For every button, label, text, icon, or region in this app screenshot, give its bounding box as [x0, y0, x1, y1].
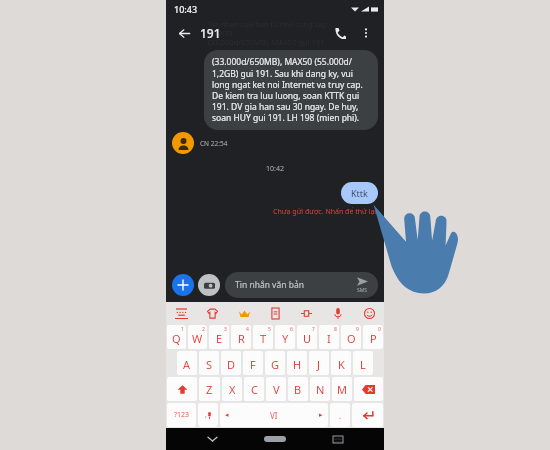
button[interactable]: Clipboard [266, 304, 284, 322]
staticText: Y [282, 331, 289, 346]
staticText: Z [206, 382, 213, 397]
button[interactable]: 3 [209, 325, 229, 349]
button[interactable]: 8 [319, 325, 339, 349]
button[interactable]: . [330, 403, 350, 427]
staticText: SMS [357, 287, 368, 294]
staticText: J [317, 357, 321, 372]
button[interactable]: ?123 [167, 403, 196, 427]
button[interactable]: Home [258, 429, 292, 449]
staticText: 2 [202, 326, 205, 333]
button[interactable]: Stickers [203, 304, 221, 322]
button[interactable]: 9 [341, 325, 361, 349]
staticText: L [360, 357, 366, 372]
button[interactable]: Space [220, 403, 328, 427]
button[interactable]: L [353, 351, 373, 375]
staticText: D [227, 357, 236, 372]
staticText: 9 [356, 326, 359, 333]
button[interactable]: D [221, 351, 241, 375]
staticText: ◂ [225, 411, 229, 419]
button[interactable]: 1 [167, 325, 186, 349]
button[interactable]: More options [356, 23, 376, 43]
staticText: Kttk [351, 187, 368, 199]
staticText: E [216, 331, 223, 346]
staticText: O [347, 331, 356, 346]
staticText: VI [270, 410, 278, 421]
button[interactable]: Camera [198, 274, 220, 296]
button[interactable]: 0 [363, 325, 383, 349]
button[interactable]: Emoji [360, 304, 378, 322]
other: Tap gesture [370, 200, 460, 295]
staticText: Q [172, 331, 181, 346]
staticText: R [238, 331, 245, 346]
button[interactable]: Text edit [297, 304, 315, 322]
button[interactable]: 6 [275, 325, 295, 349]
button[interactable]: S [199, 351, 219, 375]
button[interactable]: 2 [188, 325, 207, 349]
button[interactable]: (33.000d/650MB), MAX50 (55.000d/1,2GB) g… [204, 50, 378, 130]
staticText: F [250, 357, 256, 372]
staticText: 191 [200, 25, 221, 41]
staticText: . [339, 410, 342, 421]
staticText: 6 [290, 326, 293, 333]
staticText: U [303, 331, 312, 346]
button[interactable]: Back [202, 429, 222, 449]
button[interactable]: A [177, 351, 197, 375]
staticText: 10:43 [174, 3, 198, 15]
staticText: G [271, 357, 280, 372]
button[interactable]: V [266, 377, 286, 401]
staticText: 3 [224, 326, 227, 333]
staticText: K [338, 357, 345, 372]
button[interactable]: B [288, 377, 308, 401]
staticText: , [205, 410, 207, 420]
button[interactable]: M [332, 377, 352, 401]
button[interactable]: F [243, 351, 263, 375]
staticText: X [229, 382, 236, 397]
staticText: I [327, 331, 331, 346]
button[interactable]: Switch keyboard [328, 429, 348, 449]
button[interactable]: Premium [235, 304, 253, 322]
staticText: 1 [181, 326, 184, 333]
button[interactable]: N [310, 377, 330, 401]
button[interactable] [172, 132, 194, 154]
staticText: CN 22:54 [200, 139, 228, 148]
staticText: B [294, 382, 302, 397]
staticText: V [273, 382, 280, 397]
button[interactable]: Call [330, 23, 350, 43]
staticText: ?123 [174, 410, 190, 420]
button[interactable]: Kttk [341, 182, 378, 204]
button[interactable]: Enter [352, 403, 383, 427]
staticText: 4 [246, 326, 249, 333]
staticText: Tin nhan cua ban tu nha cung cap MAX70 (… [208, 19, 342, 47]
staticText: (33.000d/650MB), MAX50 (55.000d/1,2GB) g… [212, 56, 370, 124]
staticText: 5 [268, 326, 271, 333]
button[interactable]: K [331, 351, 351, 375]
button[interactable]: Shift [167, 377, 197, 401]
staticText: T [260, 331, 267, 346]
button[interactable]: Add attachment [172, 274, 194, 296]
button[interactable]: Tin nhắn văn bản [225, 272, 378, 298]
button[interactable]: 5 [253, 325, 273, 349]
button[interactable]: 4 [231, 325, 251, 349]
button[interactable]: X [222, 377, 242, 401]
staticText: Tin nhắn văn bản [235, 279, 304, 291]
staticText: P [370, 331, 377, 346]
button[interactable]: Voice [198, 403, 218, 427]
staticText: Chưa gửi được. Nhấn để thử lại. [172, 207, 378, 217]
button[interactable]: J [309, 351, 329, 375]
button[interactable]: 7 [297, 325, 317, 349]
button[interactable]: Voice input [329, 304, 347, 322]
button[interactable]: H [287, 351, 307, 375]
staticText: 10:42 [172, 164, 378, 174]
staticText: H [293, 357, 302, 372]
button[interactable]: Back [174, 23, 194, 43]
staticText: ▸ [319, 411, 323, 419]
button[interactable]: Backspace [354, 377, 383, 401]
staticText: 7 [312, 326, 315, 333]
button[interactable]: C [244, 377, 264, 401]
staticText: S [206, 357, 213, 372]
button[interactable]: Z [199, 377, 220, 401]
button[interactable]: G [265, 351, 285, 375]
staticText: N [316, 382, 325, 397]
button[interactable]: Keyboard [172, 304, 190, 322]
staticText: W [192, 331, 203, 346]
